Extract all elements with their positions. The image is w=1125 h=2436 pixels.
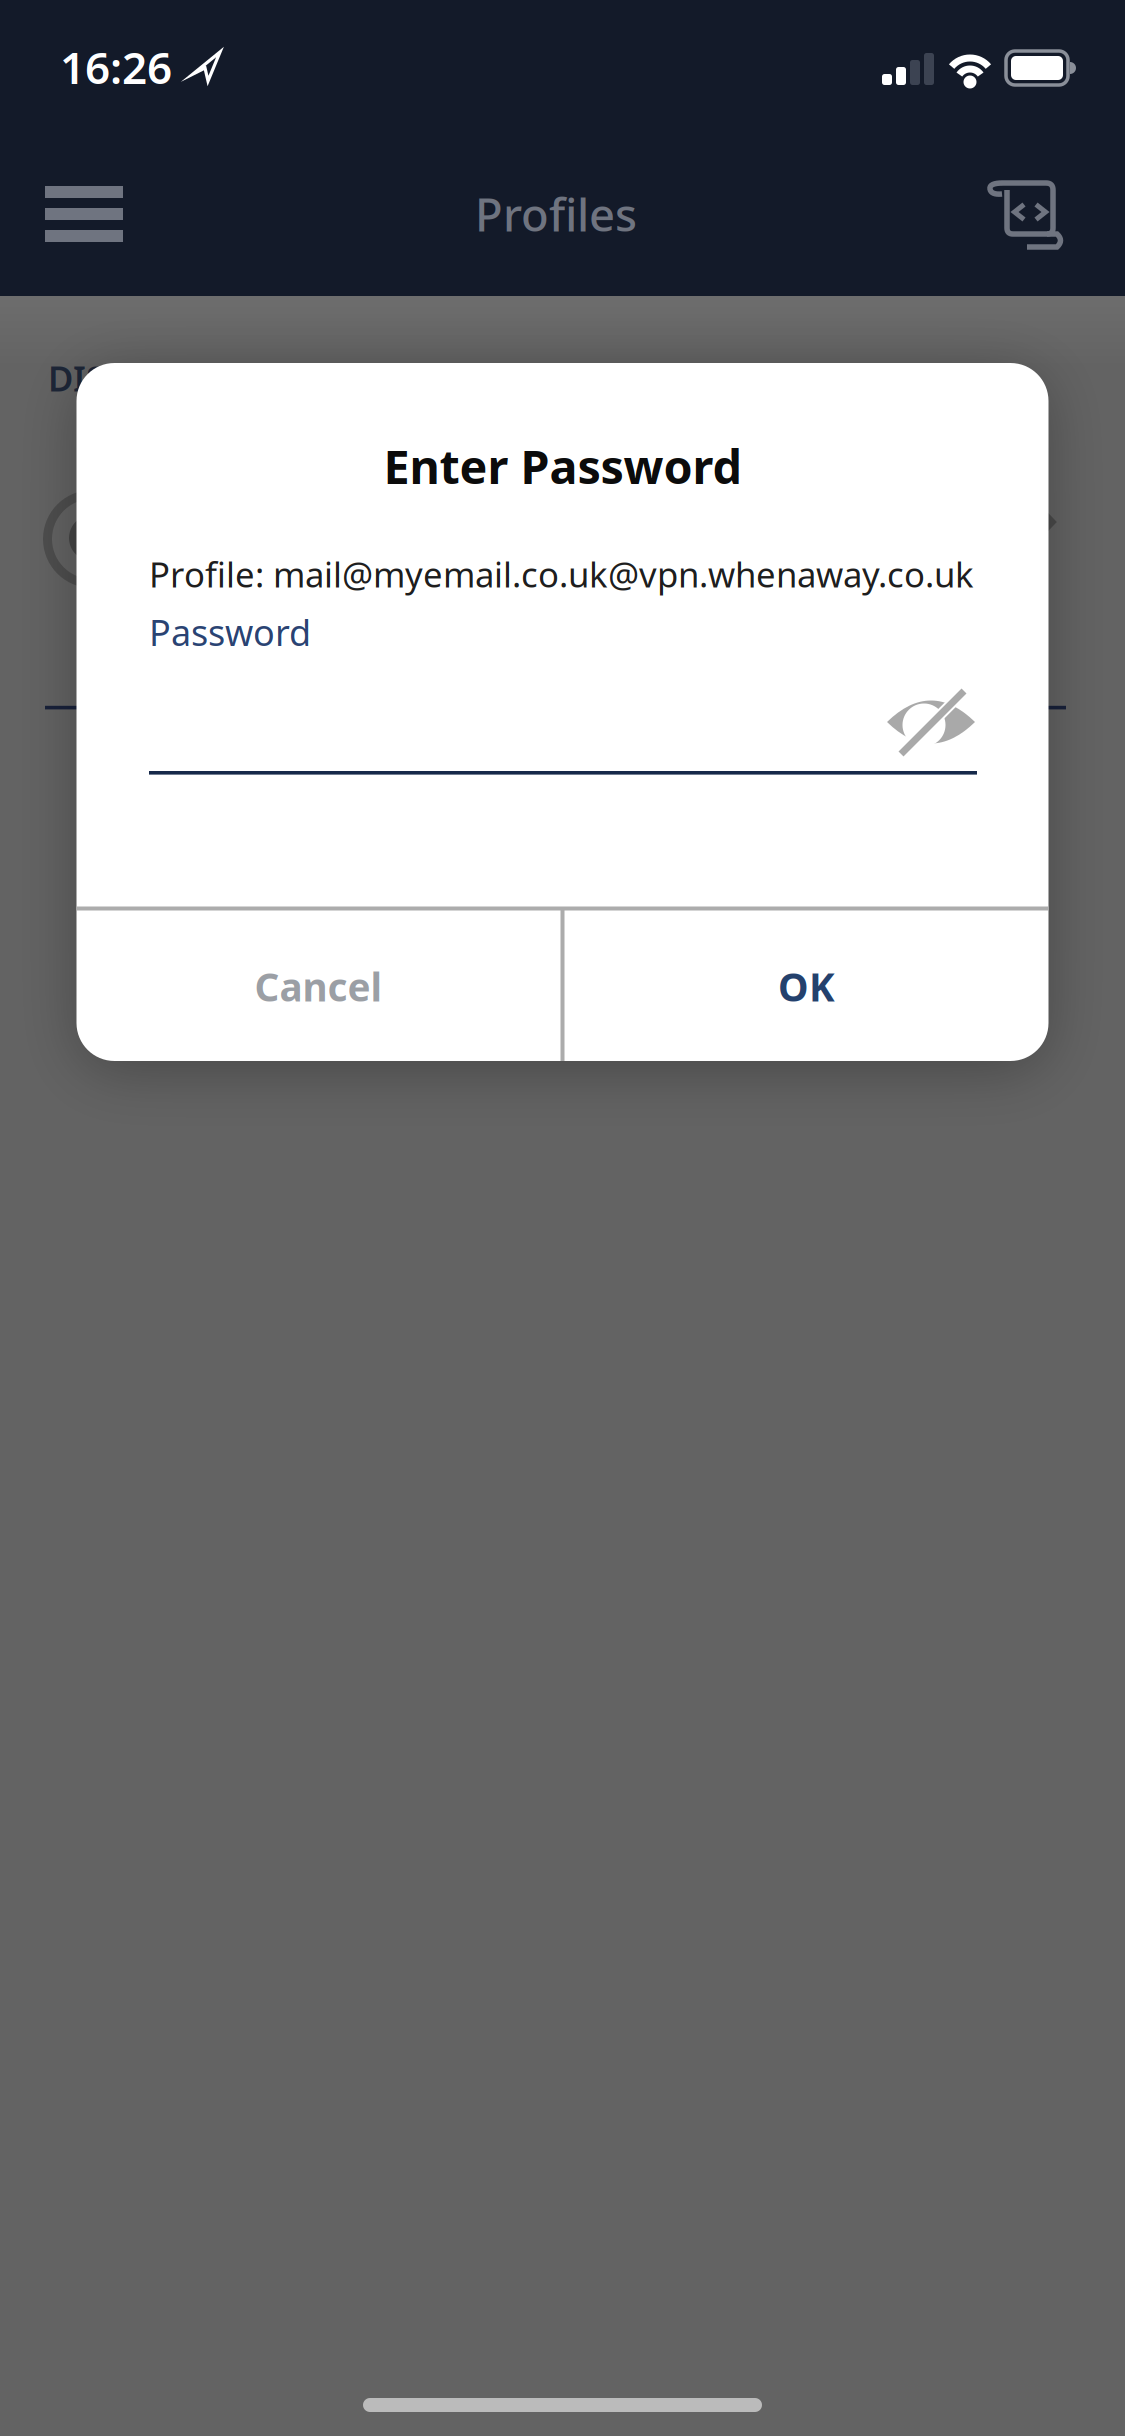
staticText: Profile: mail@myemail.co.uk@vpn.whenaway… [149,551,974,597]
button[interactable]: View log [978,170,1076,258]
staticText: Password [149,608,311,656]
button[interactable]: Menu [33,173,135,255]
staticText: Enter Password [383,435,741,497]
staticText: Cancel [254,961,382,1012]
button[interactable]: Cancel [77,912,559,1060]
staticText: DISCONNECTED [48,355,312,401]
staticText: Profiles [475,184,637,244]
button[interactable]: OK [566,912,1046,1060]
button[interactable]: Show password [884,686,976,756]
staticText: 16:26 [60,38,172,96]
staticText: OK [778,961,835,1012]
